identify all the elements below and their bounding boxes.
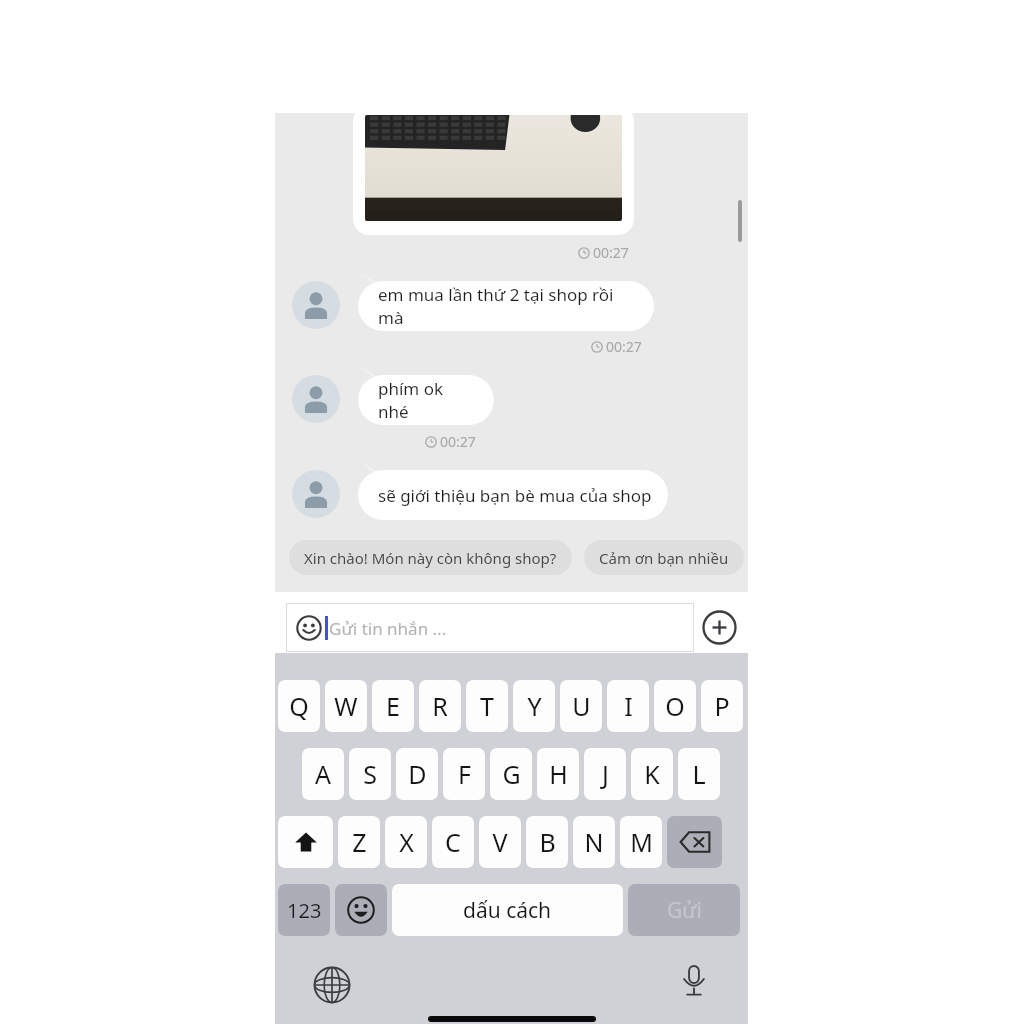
button[interactable]: Xin chào! Món này còn không shop? <box>289 540 572 575</box>
staticText: A <box>315 757 331 791</box>
staticText: O <box>665 689 685 723</box>
button[interactable]: Xóa <box>667 816 722 868</box>
button[interactable]: O <box>654 680 696 732</box>
staticText: Z <box>352 825 367 859</box>
button[interactable]: M <box>620 816 662 868</box>
button[interactable]: V <box>479 816 521 868</box>
staticText: U <box>572 689 591 723</box>
button[interactable]: dấu cách <box>392 884 623 936</box>
staticText: M <box>630 825 653 859</box>
button[interactable]: A <box>302 748 344 800</box>
button[interactable]: F <box>443 748 485 800</box>
button[interactable]: Ảnh đại diện <box>292 281 340 329</box>
button[interactable]: B <box>526 816 568 868</box>
button[interactable]: sẽ giới thiệu bạn bè mua của shop <box>350 470 668 520</box>
staticText: dấu cách <box>463 896 552 925</box>
staticText: phím ok nhé <box>378 377 478 423</box>
staticText: K <box>644 757 660 791</box>
staticText: Cảm ơn bạn nhiều <box>599 548 729 568</box>
button[interactable]: 123 <box>278 884 330 936</box>
button[interactable]: C <box>432 816 474 868</box>
staticText: R <box>432 689 448 723</box>
staticText: T <box>480 689 494 723</box>
button[interactable]: Ảnh đại diện <box>292 375 340 423</box>
button[interactable]: K <box>631 748 673 800</box>
staticText: P <box>714 689 730 723</box>
button[interactable]: T <box>466 680 508 732</box>
button[interactable]: H <box>537 748 579 800</box>
button[interactable]: Shift <box>278 816 333 868</box>
staticText: 00:27 <box>593 243 629 262</box>
staticText: sẽ giới thiệu bạn bè mua của shop <box>378 484 652 507</box>
staticText: B <box>539 825 556 859</box>
staticText: I <box>624 689 633 723</box>
button[interactable]: phím ok nhé <box>350 375 494 425</box>
staticText: C <box>445 825 461 859</box>
button[interactable]: Cảm ơn bạn nhiều <box>584 540 744 575</box>
button[interactable]: Thêm <box>702 610 737 645</box>
button[interactable]: Nhập bằng giọng nói <box>677 964 711 998</box>
button[interactable]: N <box>573 816 615 868</box>
button[interactable]: U <box>560 680 602 732</box>
staticText: N <box>584 825 604 859</box>
staticText: L <box>692 757 706 791</box>
staticText: S <box>363 757 377 791</box>
button[interactable]: Q <box>278 680 320 732</box>
button[interactable]: Đổi ngôn ngữ <box>313 966 351 1004</box>
button[interactable]: I <box>607 680 649 732</box>
button[interactable]: J <box>584 748 626 800</box>
staticText: em mua lần thứ 2 tại shop rồi mà <box>378 283 638 329</box>
staticText: F <box>458 757 471 791</box>
button[interactable]: G <box>490 748 532 800</box>
staticText: 00:27 <box>440 432 476 451</box>
button[interactable]: R <box>419 680 461 732</box>
staticText: W <box>334 689 358 723</box>
button[interactable]: L <box>678 748 720 800</box>
staticText: Gửi <box>667 896 702 925</box>
staticText: Gửi tin nhắn ... <box>329 617 447 640</box>
button[interactable]: D <box>396 748 438 800</box>
button[interactable] <box>353 105 634 235</box>
button[interactable]: Y <box>513 680 555 732</box>
button[interactable]: Gửi <box>628 884 740 936</box>
staticText: V <box>492 825 508 859</box>
button[interactable]: em mua lần thứ 2 tại shop rồi mà <box>350 281 654 331</box>
button[interactable]: Z <box>338 816 380 868</box>
staticText: J <box>602 757 609 791</box>
button[interactable]: Gửi tin nhắn ... <box>286 603 694 652</box>
staticText: H <box>549 757 568 791</box>
button[interactable]: E <box>372 680 414 732</box>
staticText: G <box>502 757 521 791</box>
staticText: D <box>408 757 427 791</box>
button[interactable]: X <box>385 816 427 868</box>
button[interactable]: S <box>349 748 391 800</box>
staticText: Q <box>289 689 309 723</box>
button[interactable]: Biểu tượng cảm xúc <box>335 884 387 936</box>
button[interactable]: Ảnh đại diện <box>292 470 340 518</box>
button[interactable]: W <box>325 680 367 732</box>
staticText: Y <box>527 689 542 723</box>
staticText: E <box>386 689 400 723</box>
staticText: 00:27 <box>606 337 642 356</box>
staticText: X <box>399 825 414 859</box>
staticText: 123 <box>287 897 322 924</box>
staticText: Xin chào! Món này còn không shop? <box>304 548 557 568</box>
button[interactable]: P <box>701 680 743 732</box>
